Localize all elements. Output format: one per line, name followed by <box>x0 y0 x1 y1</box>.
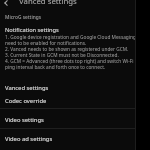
staticText: 1. Google device registration and Google… <box>5 34 136 41</box>
staticText: 4. GCM = Advanced (three dots top right)… <box>5 58 134 65</box>
staticText: Video ad settings <box>5 135 53 143</box>
button[interactable]: Notification settings <box>0 25 135 73</box>
staticText: Codec override <box>5 97 47 105</box>
staticText: 3. Current State in GCM must not be Disc… <box>5 52 119 59</box>
staticText: Video settings <box>5 116 44 124</box>
staticText: ping interval back and forth once to con… <box>5 64 106 71</box>
button[interactable]: Video ad settings <box>0 129 135 150</box>
staticText: 2. Vanced needs to be shown as registere… <box>5 46 129 53</box>
staticText: need to be enabled for notifications. <box>5 40 87 47</box>
staticText: Vanced settings <box>5 84 49 92</box>
staticText: Notification settings <box>5 26 59 34</box>
button[interactable]: Codec override <box>0 92 135 108</box>
staticText: Vanced settings <box>19 0 77 7</box>
button[interactable]: Back <box>0 0 12 9</box>
button[interactable]: Vanced settings <box>0 78 135 92</box>
button[interactable]: Video settings <box>0 109 135 129</box>
staticText: MicroG settings <box>5 14 42 21</box>
